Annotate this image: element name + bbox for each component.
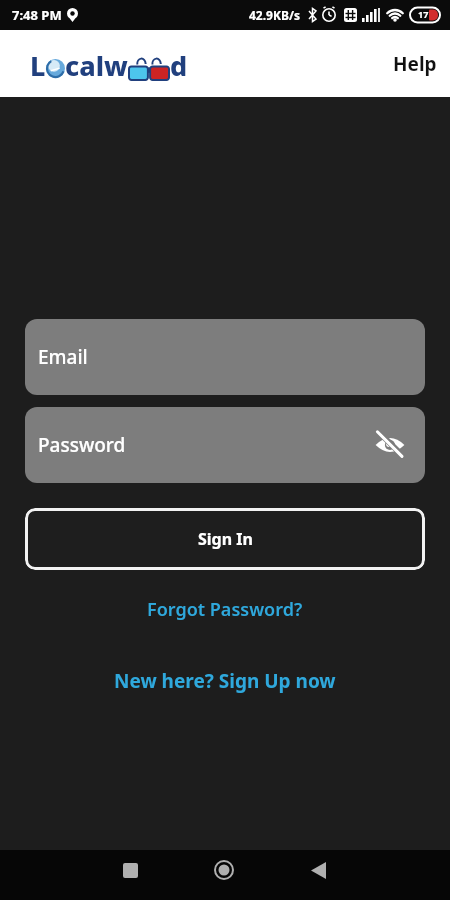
staticText: Email: [38, 344, 88, 370]
staticText: d: [170, 47, 188, 84]
staticText: 7:48 PM: [12, 6, 62, 24]
button[interactable]: Help: [393, 51, 437, 77]
staticText: calw: [65, 47, 128, 84]
staticText: L: [30, 47, 46, 84]
staticText: 42.9KB/s: [249, 7, 300, 23]
button[interactable]: [303, 855, 333, 885]
button[interactable]: Password: [25, 407, 425, 483]
staticText: Forgot Password?: [147, 597, 303, 622]
button[interactable]: Email: [25, 319, 425, 395]
staticText: Help: [393, 51, 437, 77]
button[interactable]: New here? Sign Up now: [114, 668, 336, 694]
staticText: Sign In: [198, 528, 253, 550]
button[interactable]: [209, 855, 239, 885]
staticText: Password: [38, 432, 126, 458]
button[interactable]: Forgot Password?: [147, 597, 303, 622]
button[interactable]: Sign In: [25, 508, 425, 570]
staticText: New here? Sign Up now: [114, 668, 336, 694]
staticText: 17: [418, 8, 429, 20]
button[interactable]: [375, 430, 405, 460]
button[interactable]: [115, 855, 145, 885]
